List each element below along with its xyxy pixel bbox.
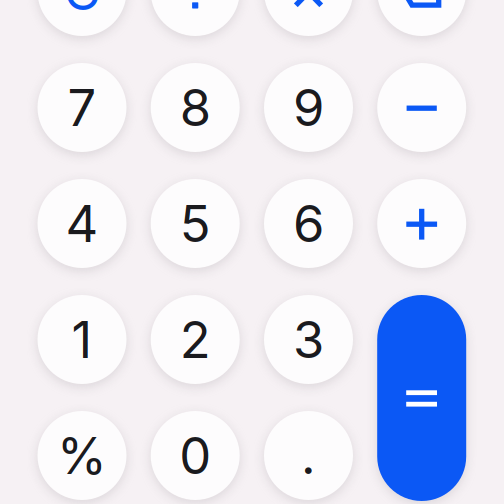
staticText: 1	[71, 309, 92, 370]
button[interactable]: Minus	[377, 63, 466, 152]
button[interactable]: Delete	[377, 0, 466, 36]
button[interactable]: 7	[37, 63, 126, 152]
staticText: C	[63, 0, 100, 22]
staticText: .	[301, 425, 316, 486]
button[interactable]: Equals	[377, 295, 466, 501]
button[interactable]: 2	[151, 295, 240, 384]
button[interactable]: %	[37, 411, 126, 500]
staticText: 6	[293, 193, 324, 254]
staticText: 3	[293, 309, 324, 370]
button[interactable]: Clear	[37, 0, 126, 36]
button[interactable]: 5	[151, 179, 240, 268]
button[interactable]: Multiply	[264, 0, 353, 36]
staticText: 8	[180, 77, 211, 138]
staticText: %	[57, 425, 107, 486]
button[interactable]: 8	[151, 63, 240, 152]
button[interactable]: 1	[37, 295, 126, 384]
button[interactable]: Divide	[151, 0, 240, 36]
staticText: 2	[180, 309, 211, 370]
button[interactable]: 4	[37, 179, 126, 268]
button[interactable]: 3	[264, 295, 353, 384]
button[interactable]: .	[264, 411, 353, 500]
staticText: 0	[179, 425, 211, 486]
staticText: 5	[180, 193, 211, 254]
staticText: 9	[293, 77, 324, 138]
button[interactable]: Plus	[377, 179, 466, 268]
button[interactable]: 9	[264, 63, 353, 152]
button[interactable]: 0	[151, 411, 240, 500]
staticText: 4	[65, 193, 98, 254]
button[interactable]: 6	[264, 179, 353, 268]
staticText: 7	[67, 77, 96, 138]
